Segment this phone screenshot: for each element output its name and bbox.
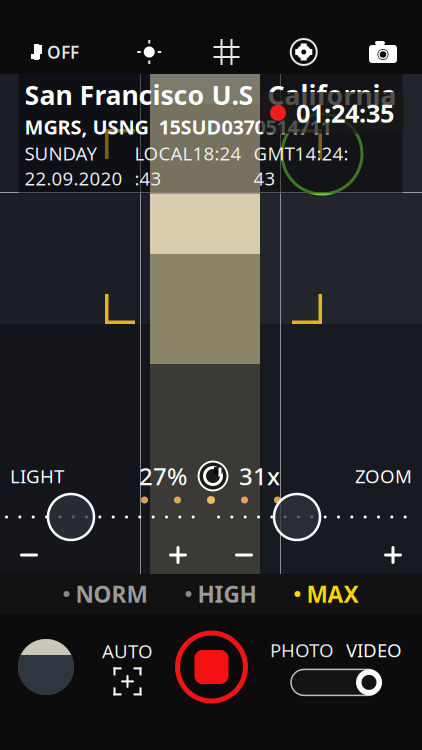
staticText: NORM — [75, 579, 147, 609]
button[interactable]: AUTO — [96, 633, 159, 701]
staticText: LOCAL18:24:43 — [134, 141, 241, 191]
button[interactable]: Stop recording — [174, 630, 248, 704]
staticText: GMT14:24:43 — [253, 141, 348, 191]
button[interactable]: Increase zoom — [378, 540, 408, 570]
button[interactable]: Flash off — [18, 34, 91, 69]
button[interactable]: Video mode selected, switch capture mode — [264, 632, 408, 702]
staticText: AUTO — [102, 639, 153, 663]
button[interactable]: HIGH — [179, 575, 262, 613]
button[interactable]: Decrease light — [14, 540, 44, 570]
staticText: PHOTO — [270, 638, 334, 662]
button[interactable]: MAX — [288, 575, 364, 613]
staticText: VIDEO — [346, 638, 402, 662]
staticText: 15SUD0370514711 — [158, 113, 331, 140]
staticText: LIGHT — [10, 464, 64, 488]
staticText: 27% — [139, 460, 187, 492]
staticText: 31x — [239, 460, 280, 492]
button[interactable]: Decrease zoom — [229, 540, 259, 570]
staticText: 01:24:35 — [296, 96, 394, 130]
staticText: San Francisco U.S California — [24, 77, 396, 112]
staticText: OFF — [47, 40, 79, 63]
staticText: MGRS, USNG — [24, 113, 148, 140]
button[interactable]: Increase light — [163, 540, 193, 570]
button[interactable]: Brightness — [130, 33, 168, 71]
staticText: ZOOM — [355, 464, 412, 488]
button[interactable]: Switch camera — [362, 34, 404, 70]
button[interactable]: Grid — [207, 33, 245, 71]
button[interactable]: NORM — [57, 575, 153, 613]
staticText: HIGH — [197, 579, 256, 609]
staticText: MAX — [306, 579, 358, 609]
button[interactable]: Photo library — [14, 635, 78, 699]
staticText: SUNDAY 22.09.2020 — [24, 141, 122, 191]
button[interactable]: Settings — [285, 33, 323, 71]
